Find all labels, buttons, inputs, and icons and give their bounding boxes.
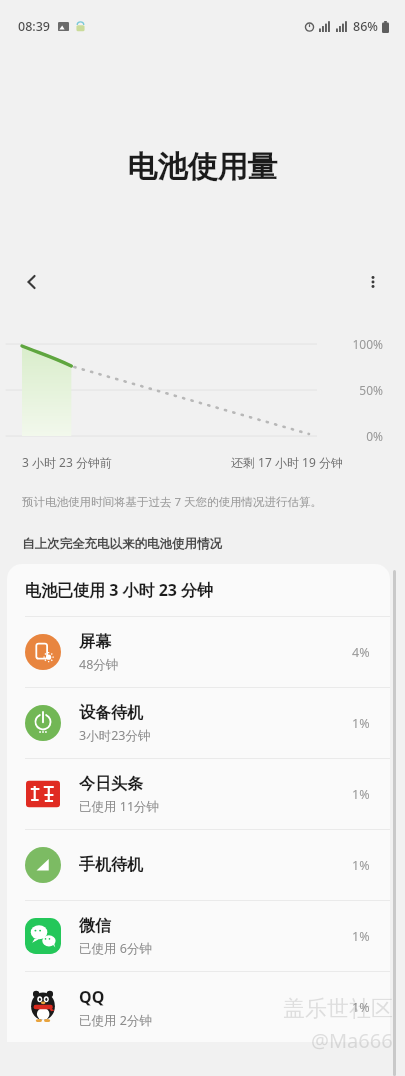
button[interactable]: 手机待机: [7, 830, 390, 900]
staticText: 50%: [327, 382, 383, 398]
staticText: 电池已使用 3 小时 23 分钟: [25, 579, 214, 601]
staticText: 还剩 17 小时 19 分钟: [231, 454, 343, 470]
staticText: 0%: [327, 428, 383, 444]
button[interactable]: QQ: [7, 972, 390, 1042]
staticText: 1%: [352, 999, 370, 1016]
staticText: 48分钟: [79, 656, 119, 673]
button[interactable]: 今日头条: [7, 759, 390, 829]
button[interactable]: 屏幕: [7, 617, 390, 687]
button[interactable]: More options: [355, 264, 391, 300]
staticText: 4%: [352, 644, 370, 661]
staticText: 3小时23分钟: [79, 727, 151, 744]
staticText: @Ma666: [311, 1027, 393, 1054]
staticText: 08:39: [18, 18, 51, 35]
staticText: 1%: [352, 857, 370, 874]
staticText: 1%: [352, 786, 370, 803]
staticText: 预计电池使用时间将基于过去 7 天您的使用情况进行估算。: [22, 494, 323, 510]
staticText: 已使用 6分钟: [79, 940, 152, 957]
staticText: 已使用 2分钟: [79, 1012, 152, 1029]
staticText: 自上次完全充电以来的电池使用情况: [22, 536, 222, 552]
button[interactable]: Back: [14, 264, 50, 300]
button[interactable]: 设备待机: [7, 688, 390, 758]
staticText: 100%: [327, 336, 383, 352]
staticText: 设备待机: [79, 703, 143, 723]
staticText: 已使用 11分钟: [79, 798, 160, 815]
staticText: 屏幕: [79, 632, 111, 652]
staticText: 86%: [353, 18, 378, 35]
staticText: 1%: [352, 715, 370, 732]
staticText: 电池使用量: [0, 148, 405, 186]
staticText: 微信: [79, 916, 111, 936]
staticText: 1%: [352, 928, 370, 945]
staticText: 今日头条: [79, 774, 143, 794]
staticText: QQ: [79, 986, 105, 1008]
staticText: 手机待机: [79, 855, 143, 875]
staticText: 盖乐世社区: [283, 995, 393, 1023]
button[interactable]: 微信: [7, 901, 390, 971]
staticText: 3 小时 23 分钟前: [22, 454, 112, 470]
